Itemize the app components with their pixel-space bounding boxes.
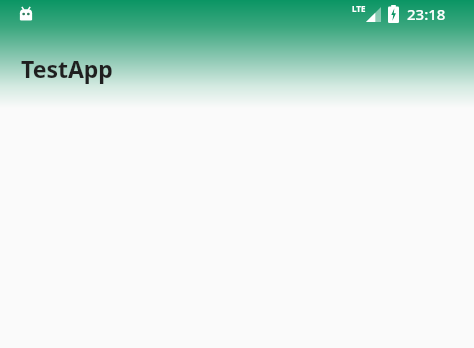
staticText: 23:18 xyxy=(407,4,446,24)
other: App notification xyxy=(17,5,35,23)
button[interactable]: TestApp xyxy=(0,46,474,90)
staticText: TestApp xyxy=(21,53,113,84)
staticText: LTE xyxy=(352,3,366,14)
